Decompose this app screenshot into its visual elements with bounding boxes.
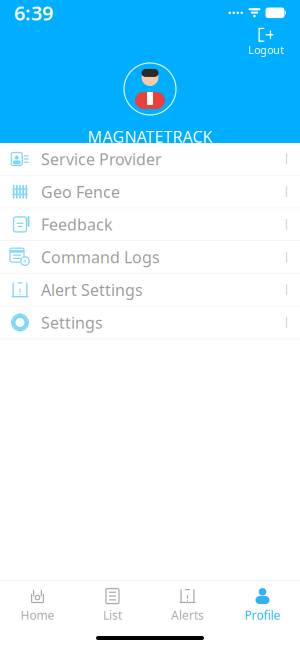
button[interactable]: List — [75, 581, 150, 627]
staticText: Home — [20, 607, 54, 623]
button[interactable]: Profile — [225, 581, 300, 627]
staticText: 6:39 — [14, 0, 53, 26]
staticText: Logout — [248, 43, 284, 57]
button[interactable]: Feedback — [0, 208, 300, 241]
button[interactable]: Service Provider — [0, 143, 300, 176]
staticText: MAGNATETRACK — [87, 126, 212, 147]
staticText: Alerts — [171, 607, 204, 623]
staticText: Geo Fence — [41, 181, 120, 202]
staticText: Settings — [41, 312, 103, 333]
staticText: Feedback — [41, 214, 113, 235]
button[interactable]: Alerts — [150, 581, 225, 627]
staticText: Command Logs — [41, 246, 160, 268]
staticText: List — [103, 607, 122, 623]
button[interactable]: Command Logs — [0, 241, 300, 274]
staticText: Alert Settings — [41, 279, 143, 300]
staticText: Service Provider — [41, 148, 162, 170]
button[interactable]: Alert Settings — [0, 274, 300, 306]
button[interactable]: Home — [0, 581, 75, 627]
staticText: Profile — [244, 607, 280, 623]
button[interactable]: Logout — [244, 26, 288, 59]
button[interactable]: Geo Fence — [0, 176, 300, 208]
button[interactable]: Settings — [0, 306, 300, 339]
